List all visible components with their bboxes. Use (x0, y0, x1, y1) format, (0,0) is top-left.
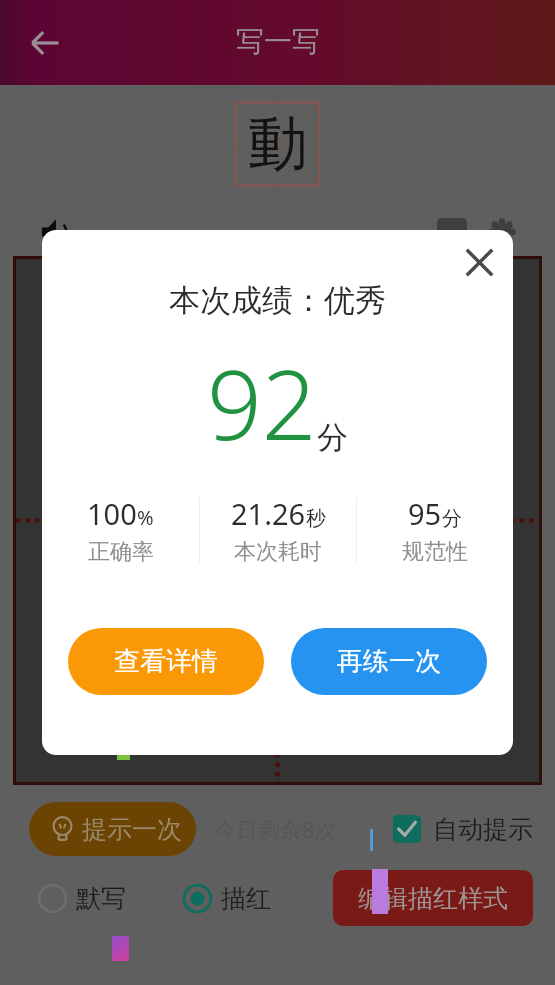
button[interactable]: Close (456, 239, 502, 285)
staticText: % (137, 504, 154, 531)
staticText: 正确率 (88, 538, 154, 566)
staticText: 分 (442, 506, 462, 531)
staticText: 分 (317, 418, 348, 457)
button[interactable]: Auto hint (393, 815, 421, 843)
button[interactable]: 再练一次 (291, 628, 487, 695)
staticText: 查看详情 (114, 645, 218, 678)
staticText: 秒 (306, 506, 326, 531)
staticText: 100 (87, 494, 137, 533)
staticText: 写一写 (236, 24, 320, 59)
staticText: 本次耗时 (234, 538, 322, 566)
staticText: 默写 (76, 883, 126, 914)
staticText: 编辑描红样式 (358, 883, 508, 914)
button[interactable]: 描红 (183, 883, 271, 914)
button[interactable]: 编辑描红样式 (333, 870, 533, 926)
staticText: 提示一次 (82, 814, 182, 845)
button[interactable]: 提示一次 (29, 802, 196, 856)
staticText: 本次成绩：优秀 (169, 281, 386, 320)
button[interactable]: Notebook (437, 218, 467, 246)
staticText: 再练一次 (337, 645, 441, 678)
staticText: 95 (408, 494, 442, 533)
staticText: 21.26 (231, 494, 306, 533)
staticText: 今日剩余8次 (214, 814, 337, 844)
staticText: 规范性 (402, 538, 468, 566)
button[interactable]: 默写 (38, 883, 126, 914)
staticText: 動 (248, 106, 308, 182)
button[interactable]: Play sound (40, 216, 72, 248)
staticText: 自动提示 (433, 814, 533, 845)
staticText: 描红 (221, 883, 271, 914)
button[interactable]: Settings (489, 219, 515, 245)
button[interactable]: Back (20, 18, 70, 68)
button[interactable]: 查看详情 (68, 628, 264, 695)
staticText: 92 (207, 337, 317, 468)
